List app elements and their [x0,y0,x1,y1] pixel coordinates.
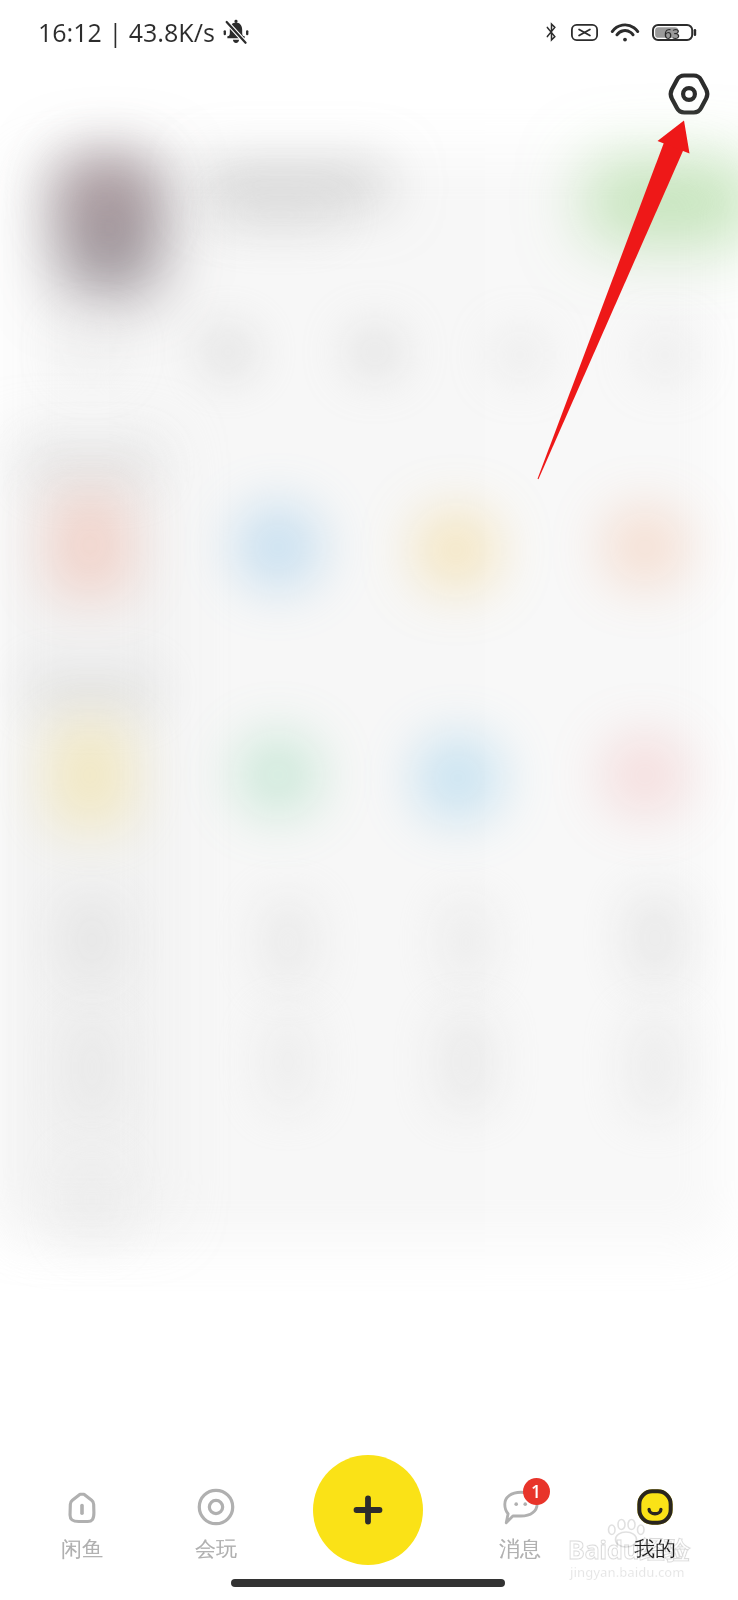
staticText: jingyan.baidu.com [570,1563,685,1581]
staticText: 1 [531,1479,542,1504]
button[interactable]: Add post [313,1455,423,1565]
staticText: 我的 [634,1536,676,1562]
button[interactable]: 会玩 [156,1488,276,1574]
button[interactable]: 闲鱼 [22,1488,142,1574]
button[interactable]: 1 [460,1488,580,1574]
staticText: 63 [664,24,681,41]
button[interactable]: 我的 [595,1488,715,1574]
staticText: 消息 [499,1536,541,1562]
staticText: 会玩 [195,1536,237,1562]
staticText: 16:12 | 43.8K/s [38,15,216,49]
button[interactable]: Settings [645,50,733,138]
staticText: 闲鱼 [61,1536,103,1562]
staticText: Baidu经验 [568,1532,690,1566]
